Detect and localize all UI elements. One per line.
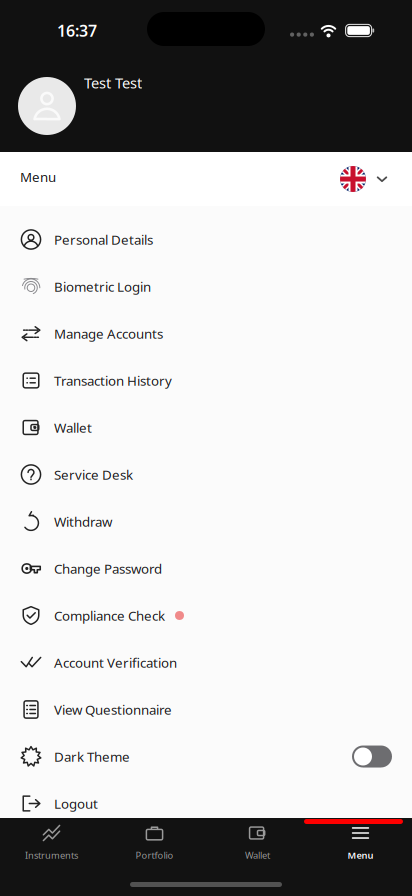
button[interactable]: Portfolio bbox=[103, 818, 206, 861]
staticText: Manage Accounts bbox=[54, 325, 163, 342]
staticText: Portfolio bbox=[135, 849, 173, 861]
button[interactable]: Wallet bbox=[0, 404, 412, 451]
staticText: 16:37 bbox=[57, 20, 97, 41]
staticText: Menu bbox=[20, 168, 56, 186]
button[interactable]: Service Desk bbox=[0, 451, 412, 498]
button[interactable]: Change Password bbox=[0, 545, 412, 592]
staticText: Wallet bbox=[245, 849, 270, 861]
button[interactable]: Wallet bbox=[206, 818, 309, 861]
button[interactable]: Compliance Check bbox=[0, 592, 412, 639]
staticText: Menu bbox=[347, 849, 373, 861]
button[interactable]: Transaction History bbox=[0, 357, 412, 404]
staticText: Transaction History bbox=[54, 372, 172, 389]
staticText: Logout bbox=[54, 795, 98, 812]
staticText: Compliance Check bbox=[54, 607, 165, 624]
button[interactable]: Menu bbox=[309, 818, 412, 861]
staticText: View Questionnaire bbox=[54, 701, 172, 718]
button[interactable]: Withdraw bbox=[0, 498, 412, 545]
staticText: Withdraw bbox=[54, 513, 112, 530]
staticText: Biometric Login bbox=[54, 278, 151, 295]
button[interactable]: Personal Details bbox=[0, 216, 412, 263]
staticText: Wallet bbox=[54, 419, 92, 436]
button[interactable]: Biometric Login bbox=[0, 263, 412, 310]
staticText: Account Verification bbox=[54, 654, 177, 671]
staticText: Service Desk bbox=[54, 466, 133, 483]
staticText: Dark Theme bbox=[54, 748, 130, 765]
staticText: Test Test bbox=[84, 73, 142, 92]
button[interactable]: Instruments bbox=[0, 818, 103, 861]
staticText: Instruments bbox=[25, 849, 78, 861]
button[interactable]: Account Verification bbox=[0, 639, 412, 686]
button[interactable]: Change language bbox=[326, 152, 412, 206]
button[interactable]: Logout bbox=[0, 780, 412, 827]
staticText: Change Password bbox=[54, 560, 162, 577]
button[interactable]: Dark Theme bbox=[0, 733, 412, 780]
button[interactable]: Manage Accounts bbox=[0, 310, 412, 357]
staticText: Personal Details bbox=[54, 231, 153, 248]
button[interactable]: View Questionnaire bbox=[0, 686, 412, 733]
